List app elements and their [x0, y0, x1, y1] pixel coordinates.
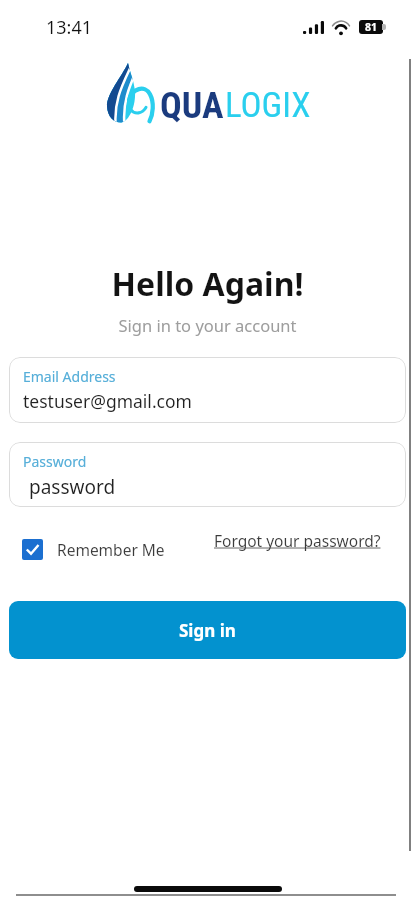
button[interactable]: Remember Me [22, 539, 165, 560]
other: Cellular signal [303, 21, 324, 34]
staticText: Sign in to your account [0, 314, 415, 336]
staticText: Sign in [179, 619, 236, 642]
staticText: Remember Me [57, 539, 165, 560]
staticText: Email Address [23, 367, 116, 386]
staticText: Hello Again! [0, 262, 415, 306]
staticText: 13:41 [46, 15, 93, 40]
staticText: QUA [160, 85, 224, 127]
staticText: password [29, 474, 116, 500]
staticText: Password [23, 452, 87, 471]
staticText: LOGIX [225, 85, 311, 126]
button[interactable]: Forgot your password? [214, 530, 381, 551]
staticText: 81 [365, 20, 378, 34]
button[interactable]: Email Address [9, 357, 406, 423]
staticText: testuser@gmail.com [23, 389, 192, 413]
staticText: Forgot your password? [214, 530, 381, 551]
button[interactable]: Password [9, 442, 406, 507]
other: Wi-Fi [331, 21, 351, 34]
button[interactable]: Sign in [9, 601, 406, 659]
